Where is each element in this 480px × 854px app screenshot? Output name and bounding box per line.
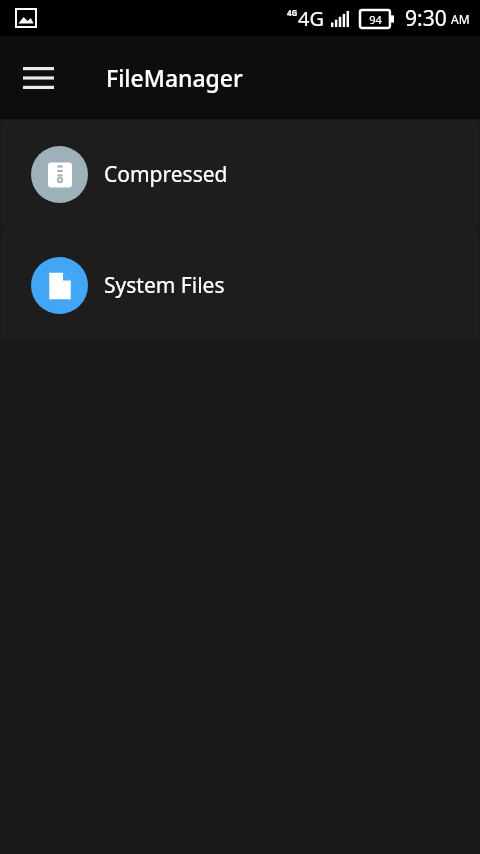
- button[interactable]: Open navigation menu: [14, 54, 62, 102]
- staticText: 4G: [298, 5, 324, 32]
- staticText: System Files: [104, 271, 225, 300]
- button[interactable]: System Files: [1, 231, 479, 340]
- staticText: AM: [451, 11, 470, 27]
- staticText: 9:30: [405, 4, 447, 33]
- button[interactable]: Compressed: [1, 120, 479, 229]
- staticText: 4G: [287, 7, 298, 18]
- staticText: Compressed: [104, 160, 228, 189]
- staticText: FileManager: [106, 62, 243, 93]
- staticText: 94: [369, 12, 382, 27]
